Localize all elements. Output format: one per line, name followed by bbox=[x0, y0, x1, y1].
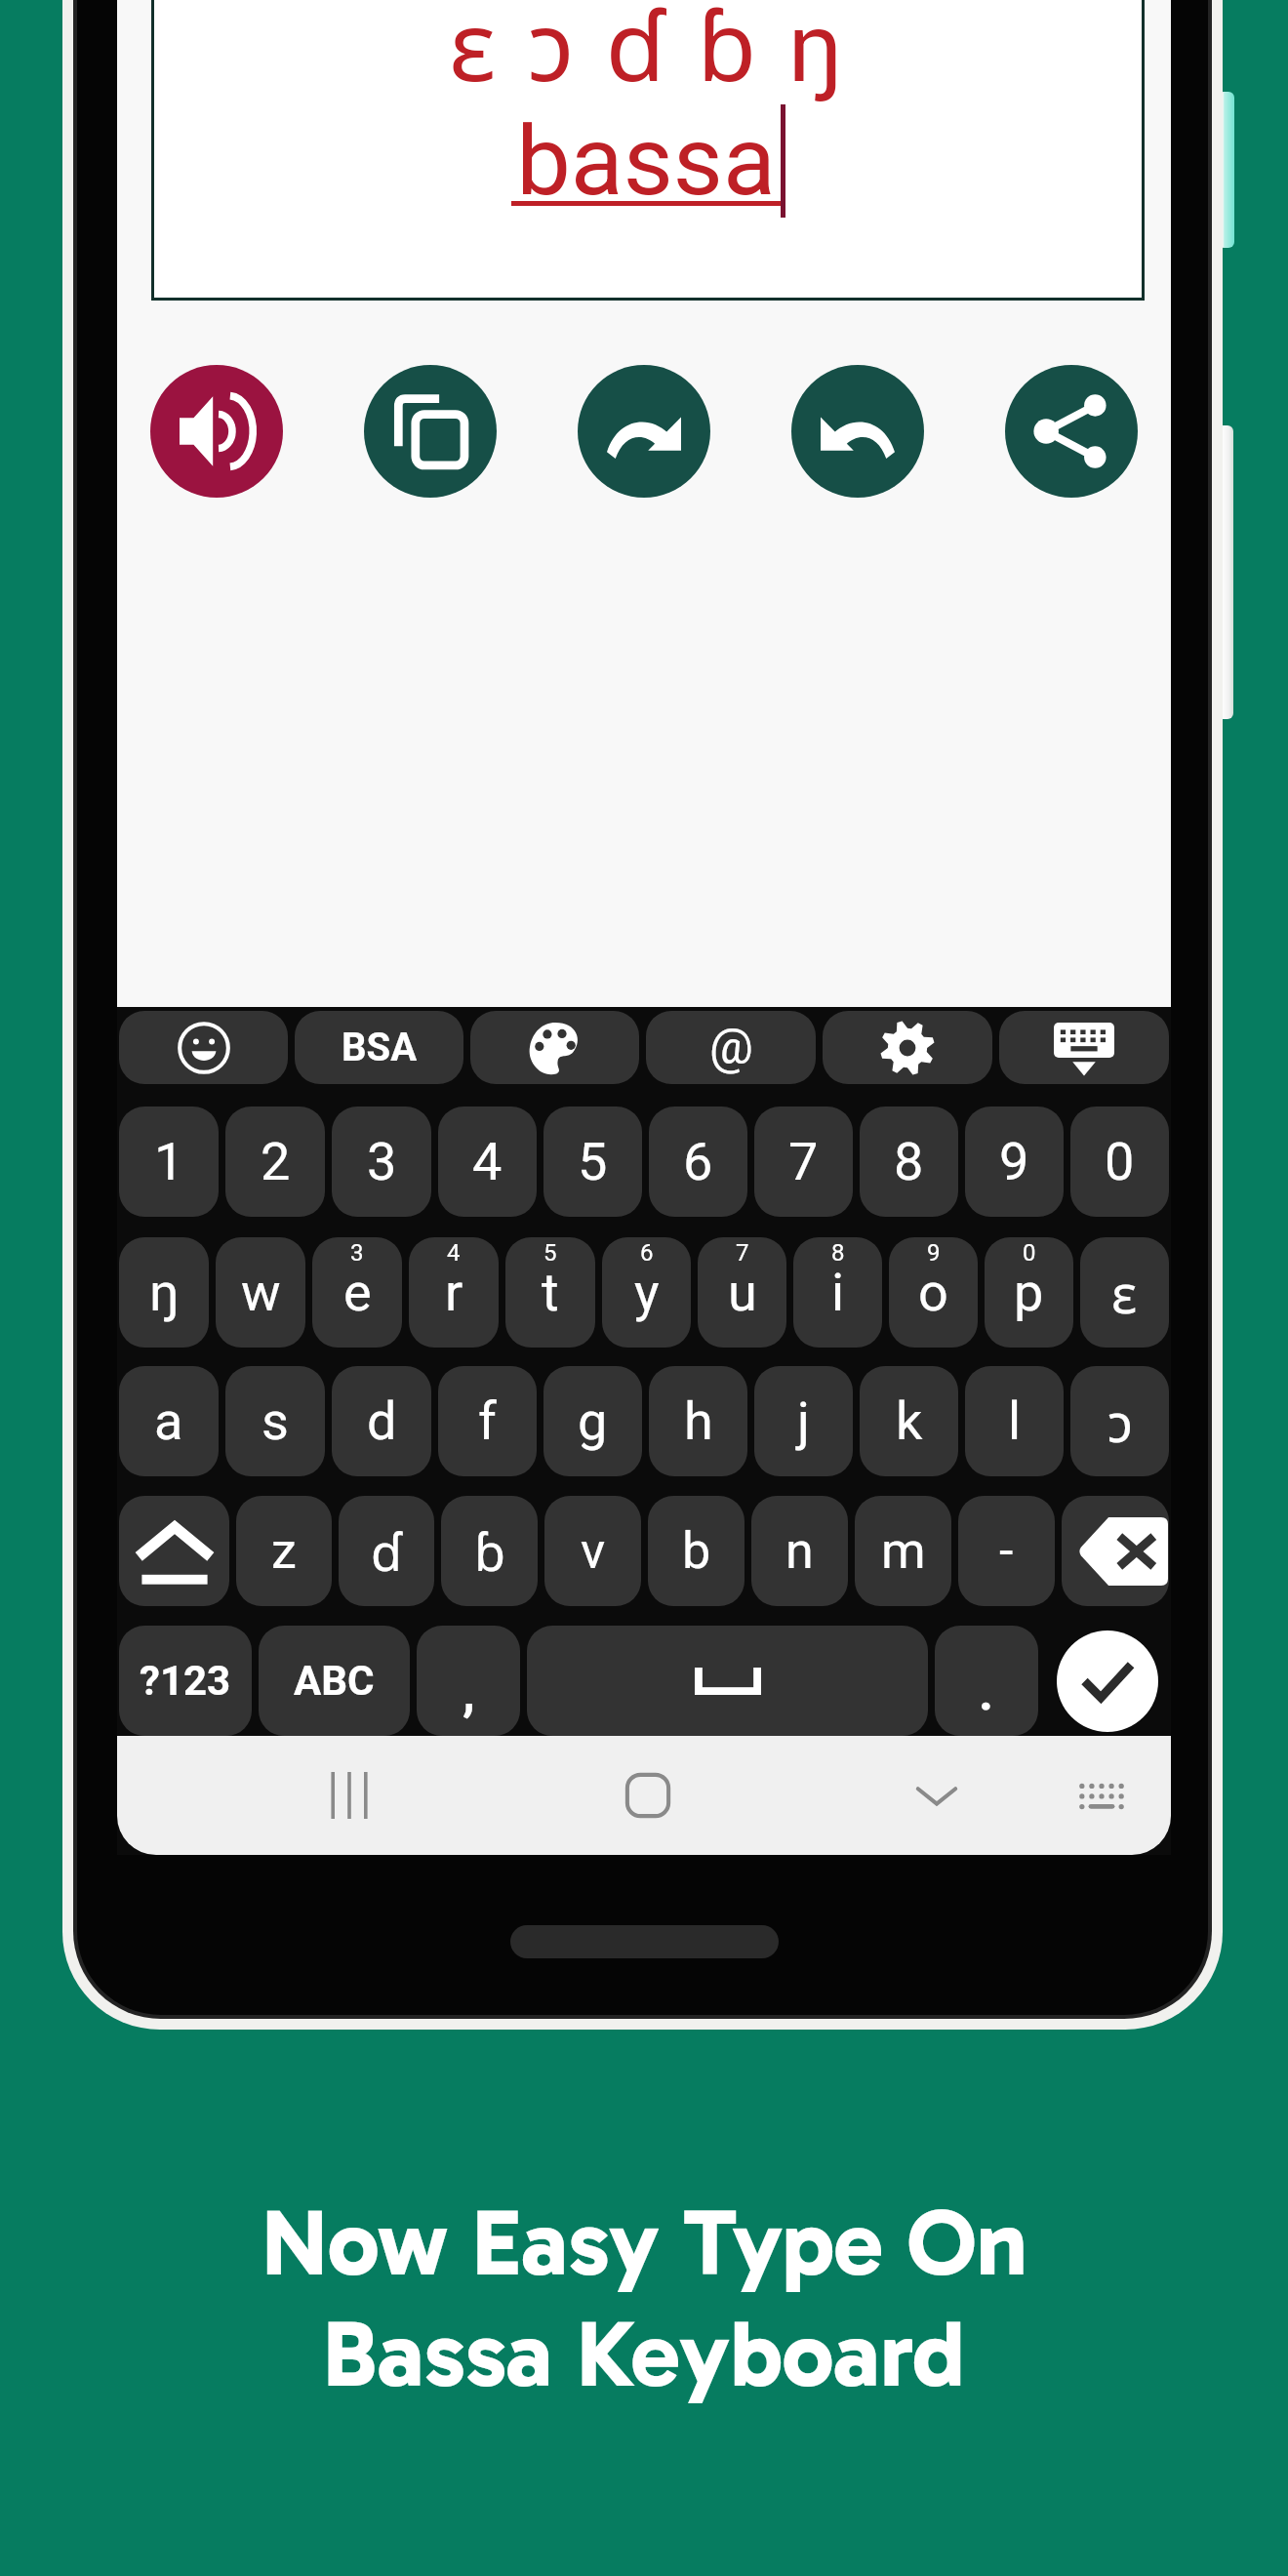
staticText: s bbox=[262, 1390, 289, 1452]
button[interactable]: s bbox=[225, 1366, 325, 1476]
button[interactable]: 3 bbox=[332, 1107, 431, 1217]
button[interactable]: ɗ bbox=[339, 1496, 434, 1606]
staticText: 9 bbox=[999, 1131, 1029, 1192]
button[interactable]: , bbox=[417, 1626, 520, 1736]
button[interactable]: ŋ bbox=[119, 1237, 209, 1348]
staticText: ŋ bbox=[149, 1262, 180, 1323]
button[interactable]: 8 bbox=[860, 1107, 958, 1217]
staticText: - bbox=[999, 1521, 1014, 1581]
button[interactable]: - bbox=[958, 1496, 1055, 1606]
button[interactable]: y bbox=[602, 1237, 691, 1348]
button[interactable]: 4 bbox=[438, 1107, 537, 1217]
staticText: e bbox=[343, 1262, 372, 1323]
button[interactable]: h bbox=[649, 1366, 747, 1476]
button[interactable]: Switch keyboard bbox=[1043, 1736, 1160, 1855]
button[interactable]: . bbox=[935, 1626, 1038, 1736]
button[interactable]: ɔ bbox=[1070, 1366, 1169, 1476]
staticText: 6 bbox=[683, 1131, 713, 1192]
button[interactable]: ?123 bbox=[119, 1626, 252, 1736]
button[interactable]: a bbox=[119, 1366, 219, 1476]
button[interactable]: 5 bbox=[543, 1107, 642, 1217]
button[interactable]: r bbox=[409, 1237, 499, 1348]
button[interactable]: Space bbox=[527, 1626, 928, 1736]
button[interactable]: 1 bbox=[119, 1107, 219, 1217]
button[interactable]: Email bbox=[646, 1011, 816, 1084]
button[interactable]: n bbox=[751, 1496, 848, 1606]
button[interactable]: Hide keyboard bbox=[999, 1011, 1169, 1084]
button[interactable]: w bbox=[216, 1237, 305, 1348]
button[interactable]: ɓ bbox=[441, 1496, 538, 1606]
staticText: g bbox=[578, 1390, 608, 1452]
staticText: ɓ bbox=[474, 1516, 505, 1586]
button[interactable]: Backspace bbox=[1062, 1496, 1169, 1606]
button[interactable]: Settings bbox=[823, 1011, 992, 1084]
staticText: 4 bbox=[447, 1239, 461, 1267]
staticText: h bbox=[684, 1390, 713, 1452]
button[interactable]: Home bbox=[589, 1736, 706, 1855]
staticText: BSA bbox=[342, 1025, 418, 1070]
button[interactable]: 0 bbox=[1070, 1107, 1169, 1217]
staticText: l bbox=[1008, 1390, 1022, 1452]
button[interactable]: Redo bbox=[578, 365, 710, 498]
staticText: ɔ bbox=[1107, 1386, 1133, 1458]
staticText: f bbox=[478, 1390, 497, 1452]
staticText: 8 bbox=[894, 1131, 924, 1192]
staticText: y bbox=[634, 1262, 660, 1323]
button[interactable]: Undo bbox=[791, 365, 924, 498]
staticText: r bbox=[445, 1262, 463, 1323]
staticText: 3 bbox=[367, 1131, 397, 1192]
button[interactable]: 9 bbox=[965, 1107, 1064, 1217]
staticText: 0 bbox=[1023, 1239, 1036, 1267]
button[interactable]: ɛ bbox=[1080, 1237, 1169, 1348]
button[interactable]: k bbox=[860, 1366, 958, 1476]
staticText: 1 bbox=[154, 1131, 184, 1192]
button[interactable]: f bbox=[438, 1366, 537, 1476]
button[interactable]: Share bbox=[1005, 365, 1138, 498]
button[interactable]: Emoji bbox=[119, 1011, 288, 1084]
button[interactable]: l bbox=[965, 1366, 1064, 1476]
button[interactable]: u bbox=[698, 1237, 786, 1348]
staticText: 5 bbox=[578, 1131, 608, 1192]
button[interactable]: Recents bbox=[291, 1736, 408, 1855]
button[interactable]: t bbox=[505, 1237, 595, 1348]
staticText: ABC bbox=[294, 1657, 375, 1705]
staticText: ɛ bbox=[1111, 1257, 1138, 1329]
staticText: k bbox=[896, 1390, 923, 1452]
button[interactable]: i bbox=[793, 1237, 882, 1348]
button[interactable]: z bbox=[236, 1496, 332, 1606]
button[interactable]: 6 bbox=[649, 1107, 747, 1217]
button[interactable]: o bbox=[889, 1237, 978, 1348]
staticText: @ bbox=[709, 1019, 753, 1076]
staticText: m bbox=[881, 1521, 926, 1581]
staticText: w bbox=[241, 1262, 281, 1323]
button[interactable]: e bbox=[312, 1237, 402, 1348]
staticText: o bbox=[918, 1262, 948, 1323]
staticText: Bassa Keyboard bbox=[323, 2299, 965, 2410]
staticText: v bbox=[581, 1521, 606, 1581]
button[interactable]: Enter bbox=[1045, 1626, 1169, 1736]
button[interactable]: Speak bbox=[150, 365, 283, 498]
button[interactable]: m bbox=[855, 1496, 951, 1606]
button[interactable]: 2 bbox=[225, 1107, 325, 1217]
staticText: 6 bbox=[640, 1239, 654, 1267]
button[interactable]: Theme bbox=[470, 1011, 639, 1084]
staticText: . bbox=[979, 1663, 994, 1722]
button[interactable]: v bbox=[544, 1496, 641, 1606]
button[interactable]: Copy bbox=[364, 365, 497, 498]
button[interactable]: 7 bbox=[754, 1107, 853, 1217]
staticText: 5 bbox=[543, 1239, 557, 1267]
staticText: d bbox=[367, 1390, 397, 1452]
button[interactable]: b bbox=[648, 1496, 745, 1606]
button[interactable]: p bbox=[985, 1237, 1073, 1348]
button[interactable]: d bbox=[332, 1366, 431, 1476]
button[interactable]: g bbox=[543, 1366, 642, 1476]
button[interactable]: ABC bbox=[259, 1626, 410, 1736]
button[interactable]: j bbox=[754, 1366, 853, 1476]
button[interactable]: Shift bbox=[119, 1496, 229, 1606]
staticText: 9 bbox=[927, 1239, 941, 1267]
button[interactable]: Hide keyboard bbox=[878, 1736, 995, 1855]
button[interactable]: Language bbox=[295, 1011, 463, 1084]
staticText: bassa bbox=[516, 104, 776, 218]
staticText: 2 bbox=[261, 1131, 291, 1192]
staticText: 4 bbox=[472, 1131, 503, 1192]
